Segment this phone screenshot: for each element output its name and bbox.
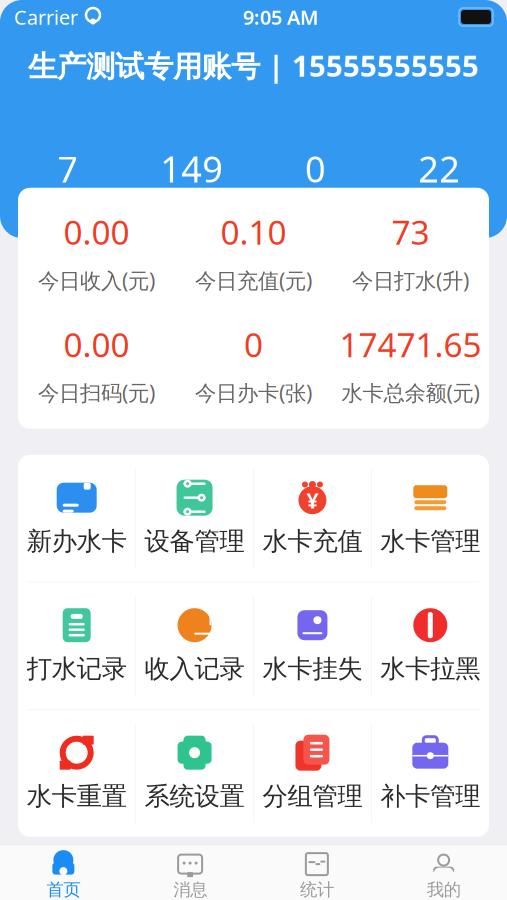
staticText: 补卡管理 bbox=[380, 781, 480, 812]
staticText: 设备管理 bbox=[145, 526, 245, 557]
button[interactable]: 消息 bbox=[127, 845, 254, 900]
staticText: 系统设置 bbox=[145, 781, 245, 812]
staticText: 打水记录 bbox=[27, 653, 127, 684]
button[interactable]: 新办水卡 bbox=[18, 455, 135, 582]
staticText: 22 bbox=[418, 145, 460, 192]
button[interactable]: 设备管理 bbox=[136, 455, 253, 582]
staticText: Carrier bbox=[14, 4, 78, 30]
staticText: 今日打水(升) bbox=[352, 266, 469, 294]
staticText: 17471.65 bbox=[339, 322, 481, 366]
button[interactable]: 打水记录 bbox=[18, 582, 135, 709]
staticText: 149 bbox=[160, 145, 223, 192]
button[interactable]: 系统设置 bbox=[136, 710, 253, 837]
button[interactable]: 水卡挂失 bbox=[254, 582, 371, 709]
staticText: 7 bbox=[57, 145, 78, 192]
staticText: 分组管理 bbox=[262, 781, 362, 812]
button[interactable]: 统计 bbox=[253, 845, 380, 900]
button[interactable]: 水卡重置 bbox=[18, 710, 135, 837]
staticText: 今日收入(元) bbox=[38, 266, 155, 294]
staticText: 0.00 bbox=[63, 210, 129, 254]
staticText: 今日扫码(元) bbox=[38, 378, 155, 407]
button[interactable]: 收入记录 bbox=[136, 582, 253, 709]
staticText: 消息 bbox=[173, 879, 207, 900]
staticText: 首页 bbox=[46, 879, 80, 900]
button[interactable]: 水卡拉黑 bbox=[372, 582, 489, 709]
staticText: 今日充值(元) bbox=[195, 266, 312, 294]
staticText: 0.00 bbox=[63, 322, 129, 366]
staticText: 73 bbox=[391, 210, 429, 254]
staticText: ¥ bbox=[306, 486, 318, 514]
button[interactable]: 水卡管理 bbox=[372, 455, 489, 582]
staticText: 0 bbox=[244, 322, 263, 366]
staticText: 水卡总余额(元) bbox=[341, 378, 479, 407]
staticText: 0 bbox=[305, 145, 326, 192]
staticText: 0.10 bbox=[220, 210, 286, 254]
staticText: 水卡拉黑 bbox=[380, 653, 480, 684]
staticText: 水卡挂失 bbox=[262, 653, 362, 684]
staticText: 生产测试专用账号 | 15555555555 bbox=[28, 46, 479, 85]
staticText: 水卡充值 bbox=[262, 526, 362, 557]
button[interactable]: ¥ bbox=[254, 455, 371, 582]
staticText: 今日办卡(张) bbox=[195, 378, 312, 407]
staticText: 水卡管理 bbox=[380, 526, 480, 557]
button[interactable]: 分组管理 bbox=[254, 710, 371, 837]
staticText: 水卡重置 bbox=[27, 781, 127, 812]
button[interactable]: 补卡管理 bbox=[372, 710, 489, 837]
staticText: 我的 bbox=[427, 879, 461, 900]
staticText: 收入记录 bbox=[145, 653, 245, 684]
button[interactable]: 首页 bbox=[0, 845, 127, 900]
staticText: 统计 bbox=[300, 879, 334, 900]
staticText: 新办水卡 bbox=[27, 526, 127, 557]
button[interactable]: 我的 bbox=[380, 845, 507, 900]
staticText: 9:05 AM bbox=[243, 4, 319, 30]
